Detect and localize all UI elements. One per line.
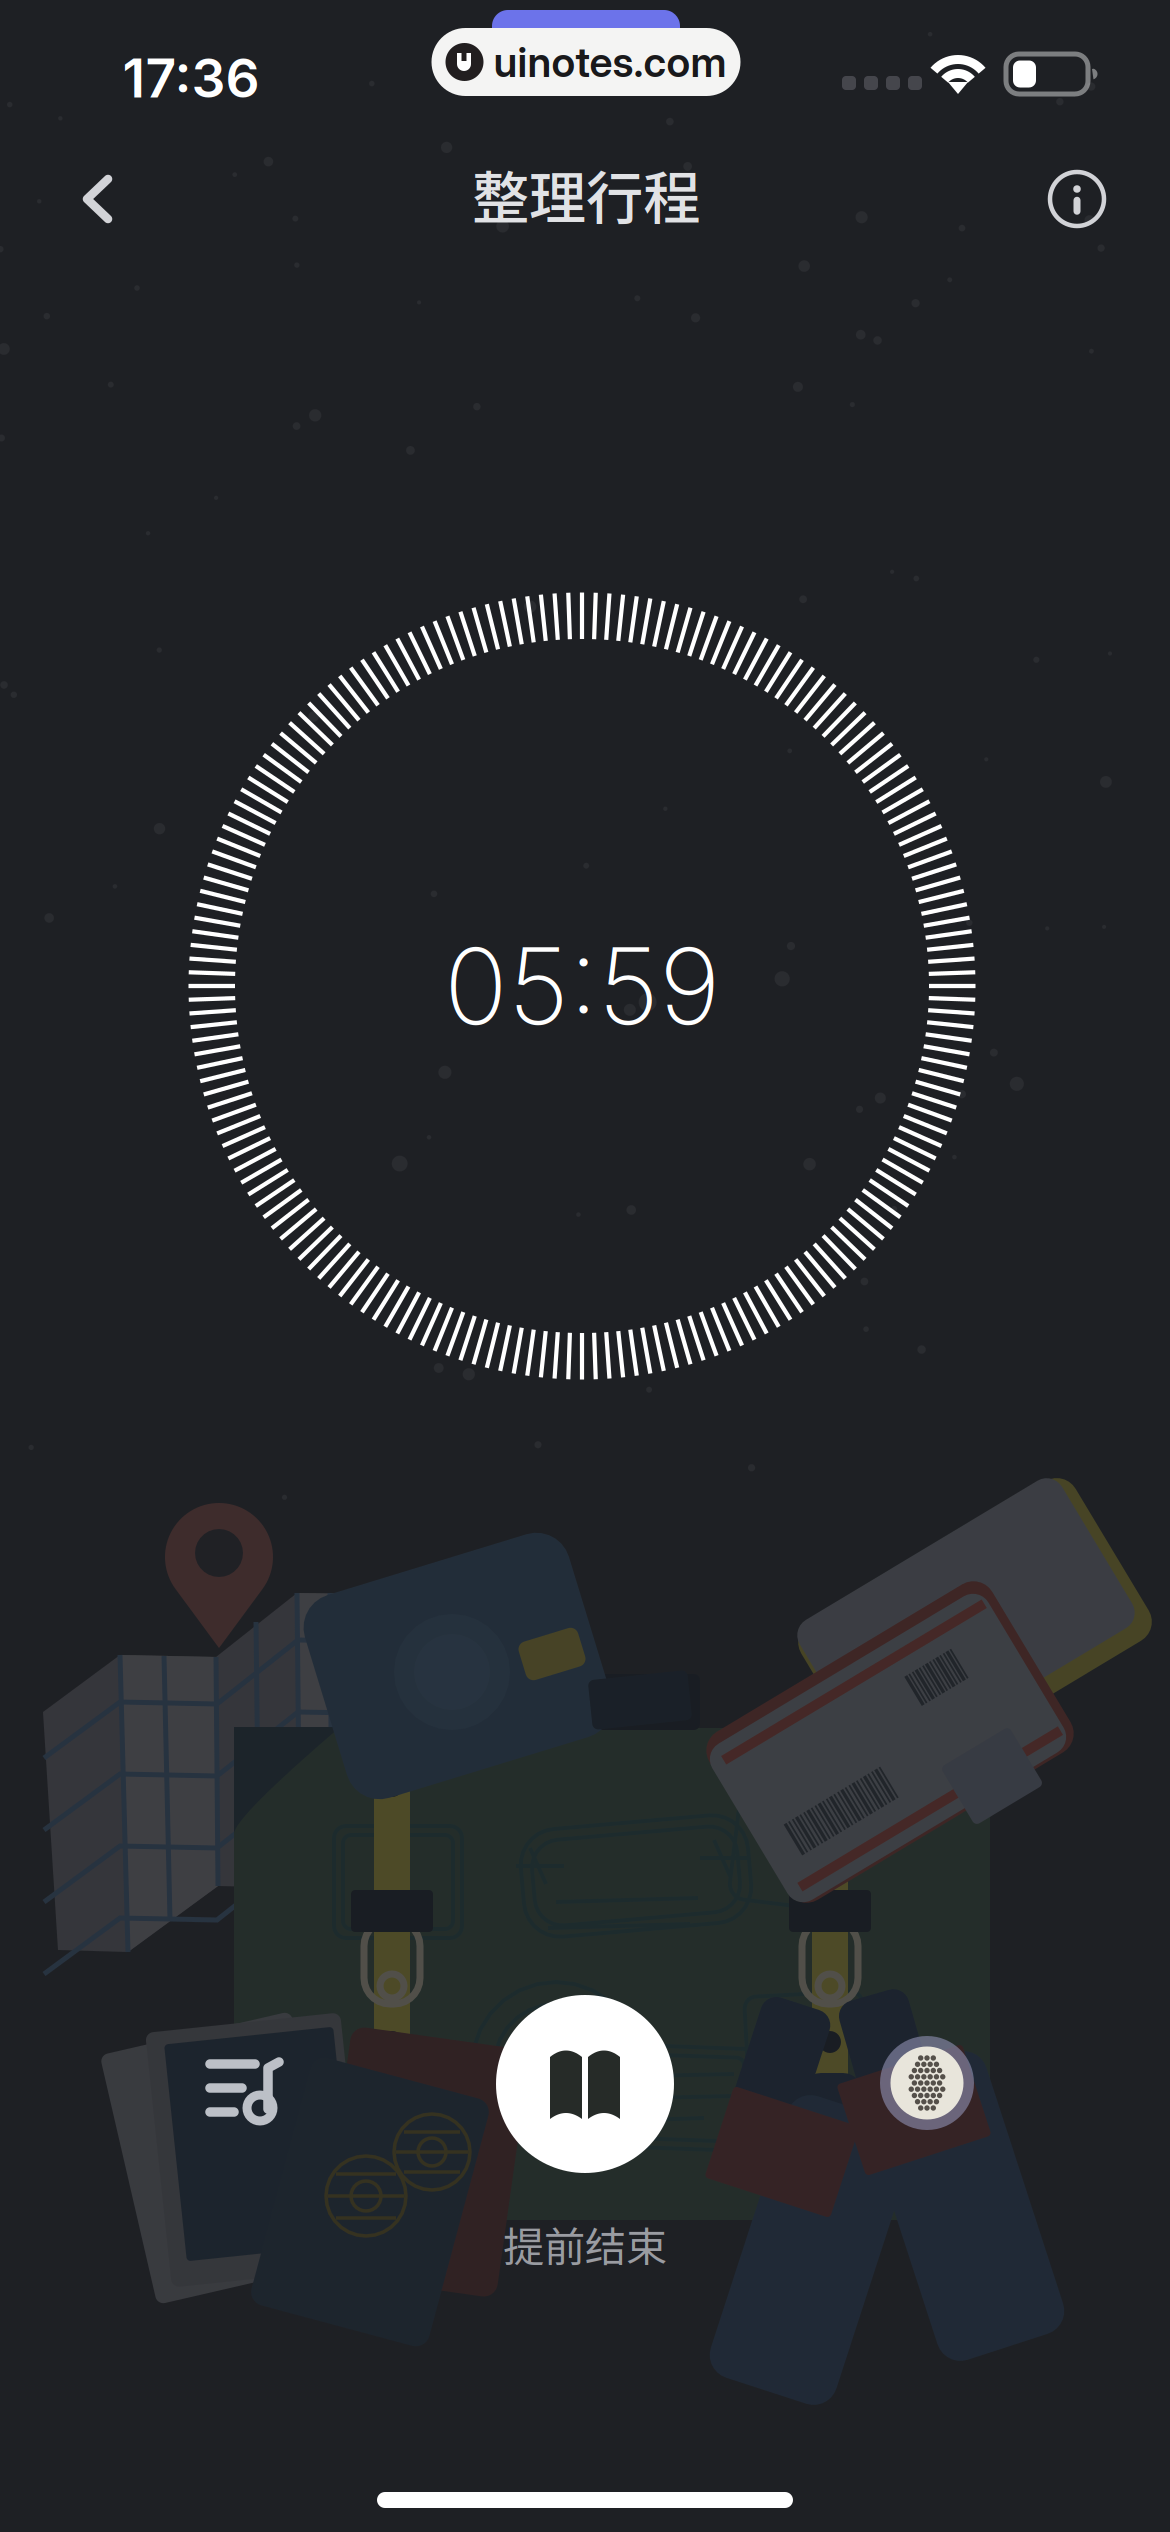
staticText: 05:59 xyxy=(444,922,720,1050)
staticText: 整理行程 xyxy=(472,152,700,235)
button[interactable]: Information xyxy=(1029,151,1125,247)
button[interactable]: Playlist xyxy=(174,2020,314,2160)
button[interactable]: White noise xyxy=(867,2023,987,2143)
staticText: uinotes.com xyxy=(493,37,726,87)
staticText: 17:36 xyxy=(122,46,259,110)
button[interactable]: Back xyxy=(50,151,146,247)
button[interactable]: Reading mode xyxy=(496,1995,674,2173)
staticText: 提前结束 xyxy=(503,2214,667,2274)
button[interactable]: 提前结束 xyxy=(435,2202,735,2286)
